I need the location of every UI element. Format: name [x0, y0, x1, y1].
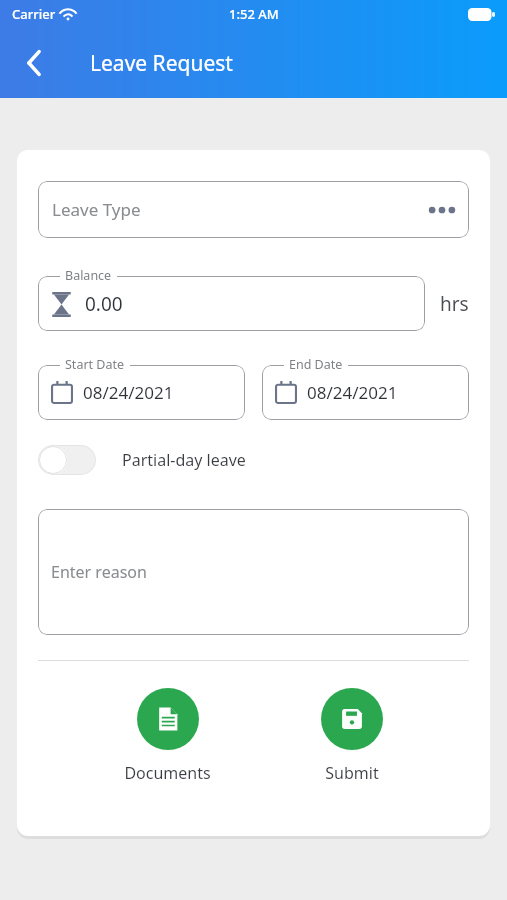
staticText: Leave Type [52, 198, 429, 221]
staticText: Partial-day leave [122, 449, 246, 471]
staticText: 0.00 [85, 291, 123, 317]
staticText: hrs [440, 291, 469, 317]
button[interactable]: Submit [321, 688, 383, 784]
button[interactable]: Balance [38, 267, 425, 331]
button[interactable]: Partial-day leave [38, 445, 469, 475]
staticText: Balance [65, 267, 112, 284]
button[interactable]: Back [12, 41, 56, 85]
staticText: Documents [124, 762, 211, 784]
staticText: Enter reason [51, 561, 147, 583]
button[interactable]: End Date [262, 356, 469, 420]
button[interactable]: Leave Type [38, 181, 469, 238]
staticText: 1:52 AM [229, 5, 279, 23]
staticText: Leave Request [90, 49, 233, 78]
staticText: 08/24/2021 [307, 381, 398, 404]
staticText: 08/24/2021 [83, 381, 174, 404]
button[interactable]: Enter reason [38, 509, 469, 635]
button[interactable]: Start Date [38, 356, 245, 420]
staticText: Start Date [65, 356, 125, 373]
staticText: Submit [325, 762, 379, 784]
staticText: End Date [289, 356, 343, 373]
button[interactable]: Documents [124, 688, 211, 784]
staticText: Carrier [12, 5, 56, 23]
